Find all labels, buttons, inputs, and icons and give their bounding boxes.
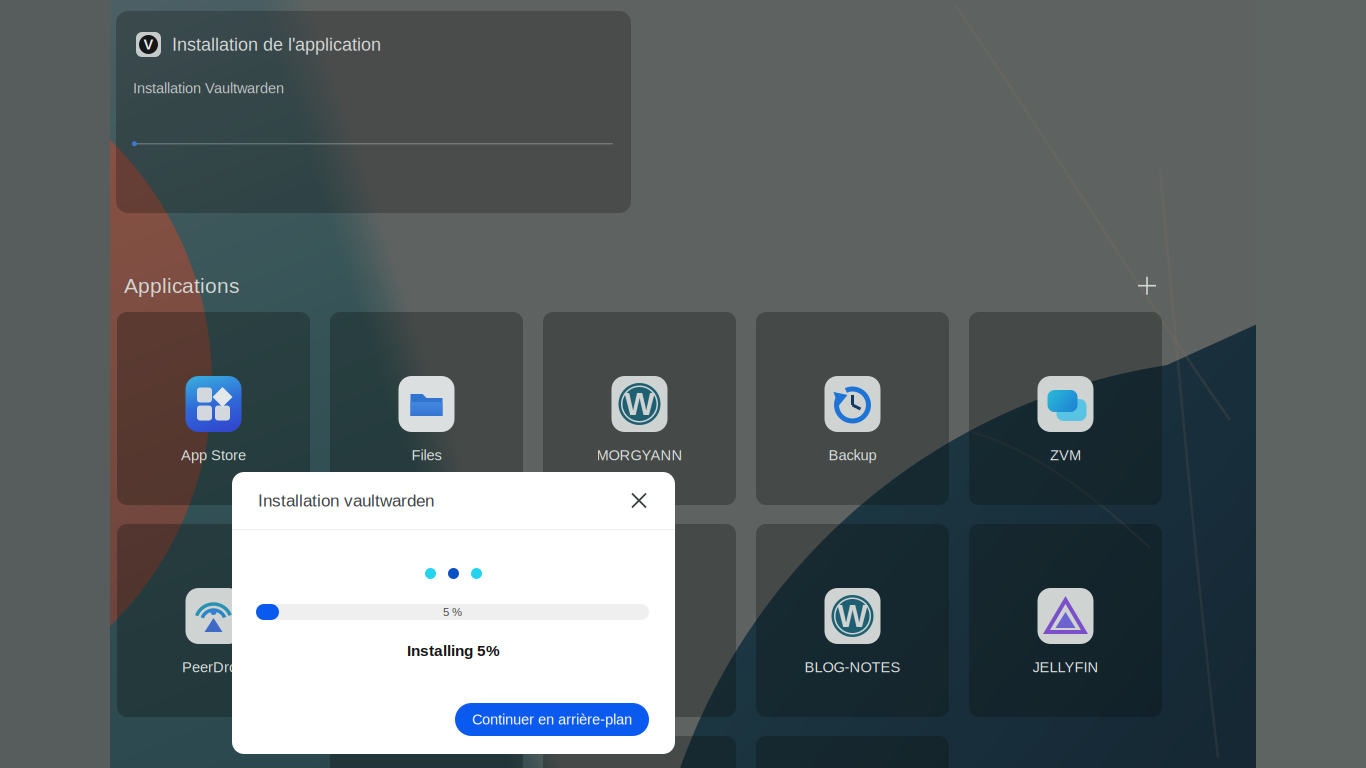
staticText: ZVM bbox=[1050, 447, 1081, 463]
button[interactable]: ZVM bbox=[969, 312, 1162, 505]
staticText: W bbox=[624, 598, 654, 634]
staticText: Installation Vaultwarden bbox=[133, 80, 284, 96]
button[interactable]: Backup bbox=[756, 312, 949, 505]
button[interactable]: W bbox=[756, 524, 949, 717]
staticText: JELLYFIN bbox=[1032, 659, 1098, 675]
staticText: Backup bbox=[828, 447, 876, 463]
button[interactable]: W bbox=[330, 524, 523, 717]
staticText: W bbox=[411, 598, 441, 634]
button[interactable]: Continuer en arrière-plan bbox=[455, 703, 649, 736]
button[interactable]: JELLYFIN bbox=[969, 524, 1162, 717]
button[interactable]: App Store bbox=[117, 312, 310, 505]
button[interactable] bbox=[330, 736, 523, 768]
staticText: Installation de l'application bbox=[172, 34, 381, 54]
button[interactable] bbox=[543, 736, 736, 768]
staticText: W bbox=[624, 386, 654, 422]
staticText: Installing 5% bbox=[407, 642, 500, 659]
staticText: 5 % bbox=[443, 606, 462, 618]
button[interactable]: Ajouter une application bbox=[1136, 275, 1158, 297]
staticText: Installation vaultwarden bbox=[258, 491, 434, 510]
staticText: MORGYANN bbox=[596, 447, 682, 463]
button[interactable]: Files bbox=[330, 312, 523, 505]
staticText: Applications bbox=[124, 274, 239, 297]
button[interactable]: PeerDrop bbox=[117, 524, 310, 717]
staticText: BLOG-NOTES bbox=[804, 659, 900, 675]
staticText: Continuer en arrière-plan bbox=[472, 711, 632, 728]
staticText: W bbox=[837, 598, 867, 634]
button[interactable]: Fermer bbox=[628, 489, 650, 511]
button[interactable]: W bbox=[543, 524, 736, 717]
staticText: PeerDrop bbox=[182, 659, 245, 675]
button[interactable]: W bbox=[543, 312, 736, 505]
staticText: App Store bbox=[181, 447, 246, 463]
staticText: Files bbox=[411, 447, 441, 463]
staticText: V bbox=[143, 36, 153, 53]
